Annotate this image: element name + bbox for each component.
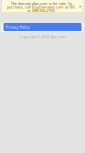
button[interactable]: Privacy Policy — [1, 23, 83, 32]
staticText: Privacy Policy — [5, 24, 29, 30]
button[interactable]: The domain dlpz.com is for sale. To — [2, 0, 83, 13]
staticText: Copyright © 2018 dlpz.com — [19, 34, 66, 39]
staticText: The domain dlpz.com is for sale. To — [11, 1, 72, 6]
staticText: or 888-906-2700. — [27, 8, 55, 13]
staticText: purchase, call BuyDomains.com at 781- — [7, 4, 76, 10]
